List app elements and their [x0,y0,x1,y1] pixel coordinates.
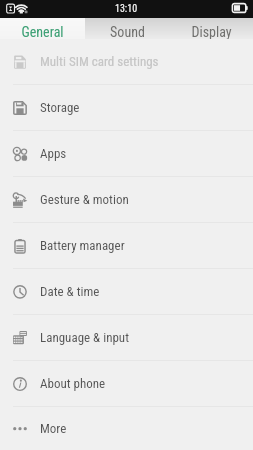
staticText: Sound [110,24,145,40]
button[interactable]: Multi SIM card settings [0,39,253,84]
button[interactable]: More [0,407,253,450]
staticText: Display [191,24,232,40]
button[interactable]: Battery manager [0,223,253,268]
staticText: Apps [40,146,67,161]
button[interactable]: Storage [0,85,253,130]
staticText: Storage [40,100,80,115]
button[interactable]: Language & input [0,315,253,360]
staticText: 13:10 [115,3,138,15]
staticText: Language & input [40,330,129,345]
button[interactable]: About phone [0,361,253,406]
staticText: General [21,24,64,40]
button[interactable]: Date & time [0,269,253,314]
staticText: More [40,421,67,436]
staticText: About phone [40,376,106,391]
button[interactable]: Gesture & motion [0,177,253,222]
staticText: Date & time [40,284,100,299]
staticText: Multi SIM card settings [40,54,159,69]
button[interactable]: Apps [0,131,253,176]
button[interactable]: Sound [85,18,169,39]
button[interactable]: General [0,18,85,39]
staticText: Gesture & motion [40,192,129,207]
staticText: Battery manager [40,238,125,253]
button[interactable]: Display [169,18,253,39]
